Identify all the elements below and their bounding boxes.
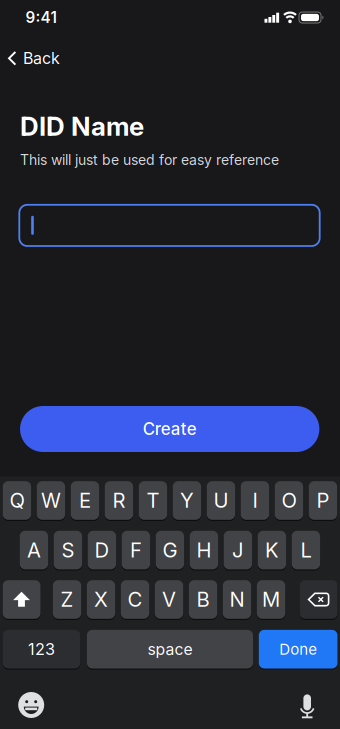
staticText: Q bbox=[9, 488, 24, 513]
button[interactable]: Emoji bbox=[18, 692, 44, 718]
button[interactable]: DID Name text field bbox=[19, 205, 320, 246]
staticText: L bbox=[300, 538, 311, 562]
staticText: This will just be used for easy referenc… bbox=[20, 151, 279, 168]
staticText: P bbox=[316, 488, 329, 513]
staticText: O bbox=[281, 488, 296, 513]
button[interactable]: H bbox=[190, 531, 218, 569]
button[interactable]: Z bbox=[53, 580, 81, 619]
button[interactable]: Q bbox=[3, 481, 31, 520]
button[interactable]: D bbox=[88, 531, 116, 569]
button[interactable]: space bbox=[87, 630, 253, 668]
staticText: N bbox=[229, 587, 244, 612]
button[interactable]: Dictation bbox=[300, 694, 315, 718]
button[interactable]: W bbox=[37, 481, 65, 520]
staticText: A bbox=[27, 538, 41, 562]
staticText: Y bbox=[180, 488, 194, 513]
button[interactable]: Numbers bbox=[3, 630, 80, 668]
staticText: K bbox=[265, 538, 279, 562]
button[interactable]: N bbox=[223, 580, 251, 619]
staticText: H bbox=[196, 538, 211, 562]
button[interactable]: A bbox=[20, 531, 48, 569]
staticText: Done bbox=[279, 640, 317, 658]
button[interactable]: G bbox=[156, 531, 184, 569]
staticText: G bbox=[162, 538, 177, 562]
staticText: T bbox=[146, 488, 159, 513]
button[interactable]: O bbox=[275, 481, 303, 520]
button[interactable]: Create bbox=[20, 406, 319, 452]
staticText: S bbox=[61, 538, 74, 562]
button[interactable]: Shift bbox=[3, 580, 40, 619]
staticText: E bbox=[79, 488, 91, 513]
button[interactable]: F bbox=[122, 531, 150, 569]
button[interactable]: Done bbox=[259, 630, 337, 668]
button[interactable]: C bbox=[121, 580, 149, 619]
button[interactable]: X bbox=[87, 580, 115, 619]
button[interactable]: S bbox=[54, 531, 82, 569]
staticText: B bbox=[196, 587, 209, 612]
staticText: space bbox=[147, 640, 192, 659]
staticText: J bbox=[232, 538, 244, 562]
button[interactable]: U bbox=[207, 481, 235, 520]
button[interactable]: B bbox=[189, 580, 217, 619]
button[interactable]: J bbox=[224, 531, 252, 569]
staticText: DID Name bbox=[20, 110, 144, 142]
staticText: V bbox=[162, 587, 176, 612]
staticText: F bbox=[130, 538, 142, 562]
staticText: Z bbox=[60, 587, 73, 612]
button[interactable]: Delete bbox=[300, 580, 337, 619]
staticText: 123 bbox=[28, 639, 55, 659]
staticText: D bbox=[94, 538, 109, 562]
staticText: Back bbox=[23, 49, 60, 68]
button[interactable]: I bbox=[241, 481, 269, 520]
button[interactable]: M bbox=[257, 580, 285, 619]
staticText: R bbox=[112, 488, 125, 513]
staticText: U bbox=[213, 488, 228, 513]
button[interactable]: K bbox=[258, 531, 286, 569]
button[interactable]: R bbox=[105, 481, 133, 520]
button[interactable]: E bbox=[71, 481, 99, 520]
staticText: 9:41 bbox=[25, 8, 56, 27]
staticText: Create bbox=[143, 419, 197, 439]
staticText: I bbox=[252, 488, 257, 513]
button[interactable]: V bbox=[155, 580, 183, 619]
button[interactable]: Back bbox=[8, 43, 60, 73]
button[interactable]: T bbox=[139, 481, 167, 520]
button[interactable]: P bbox=[309, 481, 337, 520]
button[interactable]: Y bbox=[173, 481, 201, 520]
staticText: X bbox=[94, 587, 108, 612]
staticText: W bbox=[41, 488, 61, 513]
staticText: C bbox=[127, 587, 142, 612]
button[interactable]: L bbox=[292, 531, 320, 569]
staticText: M bbox=[262, 587, 280, 612]
